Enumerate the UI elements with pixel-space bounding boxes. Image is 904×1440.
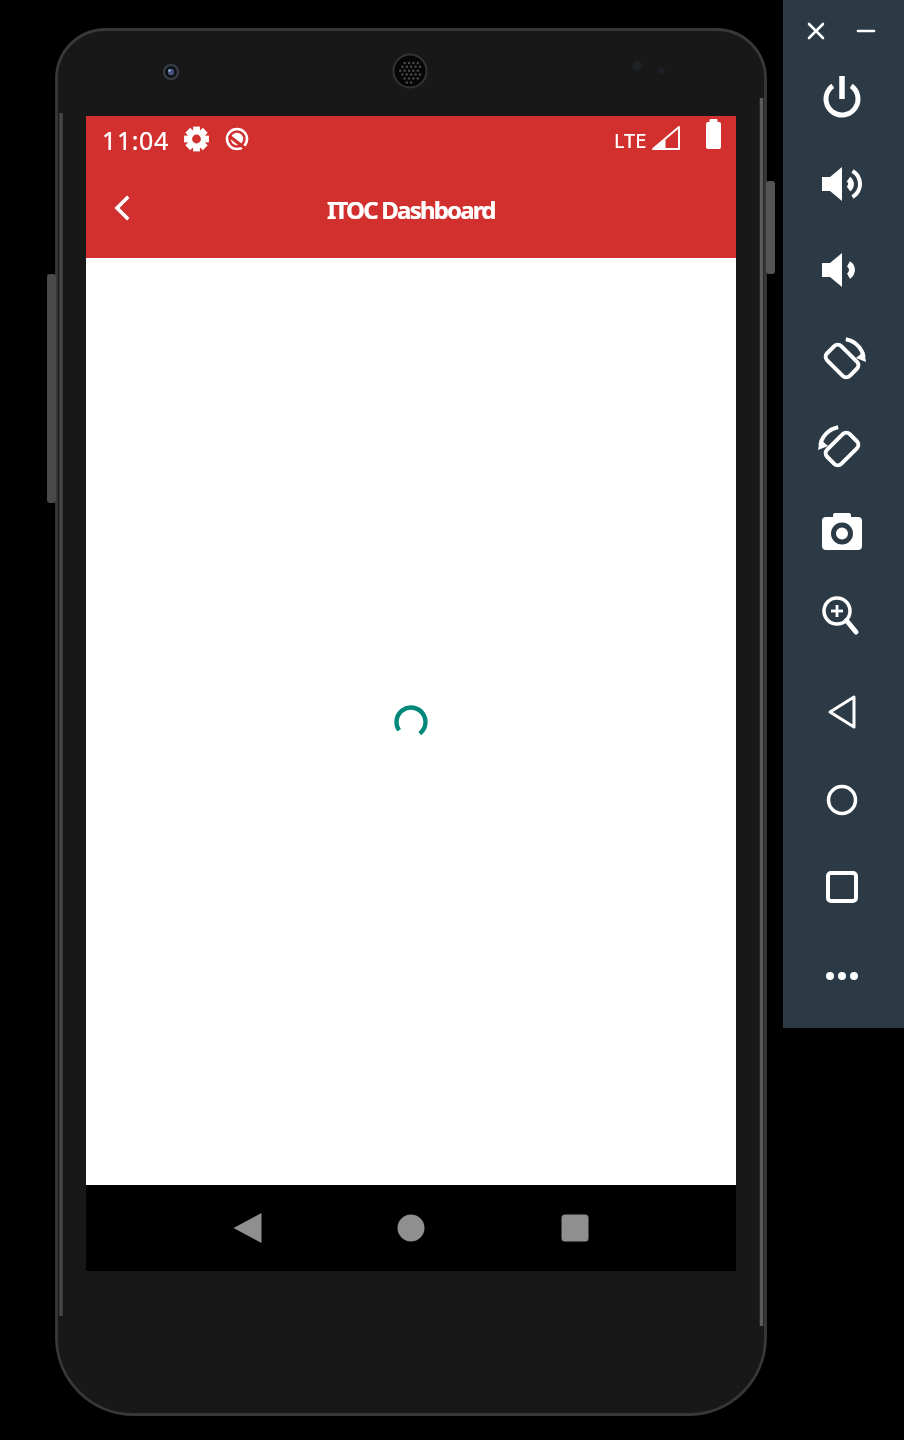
button[interactable] [873,16,904,50]
button[interactable] [547,1200,603,1256]
staticText: ITOC Dashboard [327,193,495,226]
staticText: 11:04 [102,123,169,157]
button[interactable] [383,1200,439,1256]
button[interactable] [98,184,146,232]
button[interactable] [220,1200,276,1256]
staticText: LTE [614,127,647,154]
